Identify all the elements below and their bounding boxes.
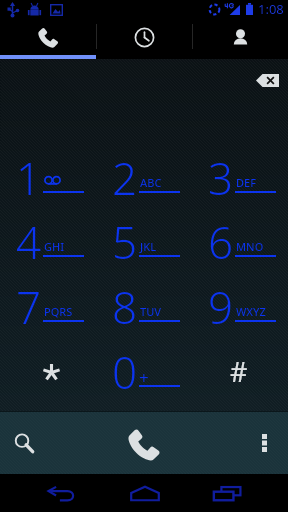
button[interactable]: 1 bbox=[0, 146, 96, 210]
staticText: 1 bbox=[16, 148, 42, 200]
staticText: DEF bbox=[236, 175, 256, 190]
staticText: WXYZ bbox=[236, 304, 266, 319]
staticText: + bbox=[139, 366, 149, 389]
button[interactable]: Back bbox=[29, 474, 93, 512]
staticText: ABC bbox=[140, 175, 162, 190]
staticText: 4 bbox=[16, 212, 42, 264]
button[interactable]: Home bbox=[113, 474, 177, 512]
button[interactable]: Call log bbox=[97, 18, 192, 55]
staticText: PQRS bbox=[44, 304, 73, 319]
button[interactable]: 5 bbox=[96, 210, 192, 274]
staticText: 5 bbox=[112, 212, 138, 264]
staticText: 3 bbox=[208, 148, 234, 200]
button[interactable]: 3 bbox=[192, 146, 288, 210]
button[interactable]: 9 bbox=[192, 274, 288, 339]
staticText: 9 bbox=[208, 277, 234, 329]
button[interactable]: 0 bbox=[96, 339, 192, 404]
button[interactable]: 4 bbox=[0, 210, 96, 274]
staticText: GHI bbox=[44, 239, 65, 254]
button[interactable]: Contacts bbox=[193, 18, 288, 55]
staticText: 6 bbox=[208, 212, 234, 264]
staticText: 1:08 bbox=[258, 0, 284, 18]
button[interactable] bbox=[0, 339, 96, 404]
staticText: MNO bbox=[236, 239, 264, 254]
staticText: 8 bbox=[112, 277, 138, 329]
button[interactable]: Search bbox=[0, 412, 48, 474]
button[interactable]: # bbox=[192, 339, 288, 404]
button[interactable]: Backspace bbox=[249, 67, 286, 93]
staticText: 2 bbox=[112, 148, 138, 200]
staticText: # bbox=[230, 353, 248, 390]
button[interactable]: 8 bbox=[96, 274, 192, 339]
button[interactable]: 7 bbox=[0, 274, 96, 339]
staticText: 0 bbox=[112, 342, 138, 394]
button[interactable]: Dialer bbox=[0, 18, 96, 55]
staticText: 7 bbox=[16, 277, 42, 329]
button[interactable]: 6 bbox=[192, 210, 288, 274]
staticText: JKL bbox=[140, 239, 157, 254]
button[interactable]: Recents bbox=[195, 474, 259, 512]
button[interactable]: 2 bbox=[96, 146, 192, 210]
staticText: TUV bbox=[140, 304, 162, 319]
button[interactable]: Call bbox=[104, 412, 184, 474]
button[interactable]: More options bbox=[240, 412, 288, 474]
